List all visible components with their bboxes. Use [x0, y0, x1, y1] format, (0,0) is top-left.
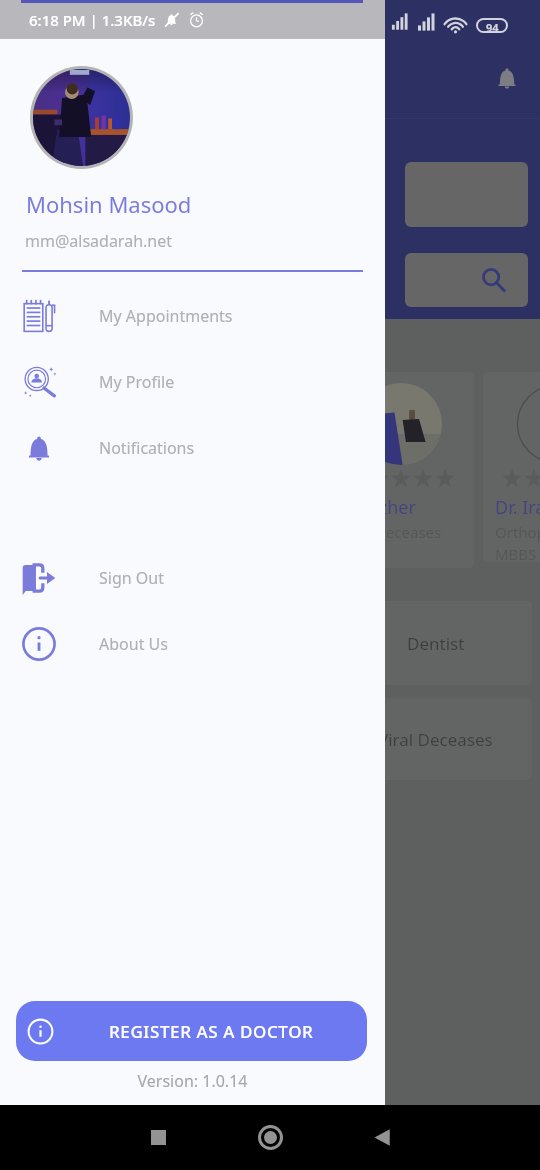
staticText: My Profile — [99, 371, 175, 393]
staticText: My Appointments — [99, 305, 233, 327]
button[interactable]: Sign Out — [0, 545, 385, 611]
staticText: 94 — [486, 20, 499, 31]
staticText: mm@alsadarah.net — [25, 230, 172, 252]
button[interactable]: Dr. Azher — [328, 372, 474, 568]
staticText: MBBS — [495, 544, 537, 562]
staticText: Viral Deceases — [378, 728, 493, 751]
staticText: Dr. Azher — [340, 495, 416, 520]
staticText: Sign Out — [99, 567, 164, 589]
button[interactable]: Mohsin Masood — [0, 0, 385, 270]
staticText: About Us — [99, 633, 168, 655]
button[interactable]: Viral Deceases — [333, 698, 532, 780]
button[interactable]: Recents — [102, 1105, 214, 1170]
staticText: REGISTER AS A DOCTOR — [109, 1020, 314, 1043]
button[interactable]: My Profile — [0, 349, 385, 415]
button[interactable]: About Us — [0, 611, 385, 677]
staticText: Version: 1.0.14 — [0, 1070, 385, 1092]
button[interactable] — [405, 253, 528, 307]
button[interactable]: Home — [214, 1105, 326, 1170]
staticText: Dentist — [407, 632, 465, 655]
button[interactable]: Dentist — [333, 601, 532, 685]
button[interactable]: My Appointments — [0, 283, 385, 349]
staticText: Viral Deceases — [340, 522, 442, 542]
button[interactable]: Notifications — [491, 62, 523, 94]
staticText: Notifications — [99, 437, 195, 459]
staticText: Dr. Iram — [495, 495, 540, 520]
button[interactable]: Back — [326, 1105, 438, 1170]
staticText: 6:18 PM | 1.3KB/s — [29, 10, 156, 30]
button[interactable]: Notifications — [0, 415, 385, 481]
staticText: Mohsin Masood — [26, 189, 192, 219]
button[interactable]: REGISTER AS A DOCTOR — [16, 1001, 367, 1061]
button[interactable] — [405, 162, 528, 227]
button[interactable]: Dr. Iram — [483, 372, 540, 562]
staticText: Orthopedic — [495, 522, 540, 542]
